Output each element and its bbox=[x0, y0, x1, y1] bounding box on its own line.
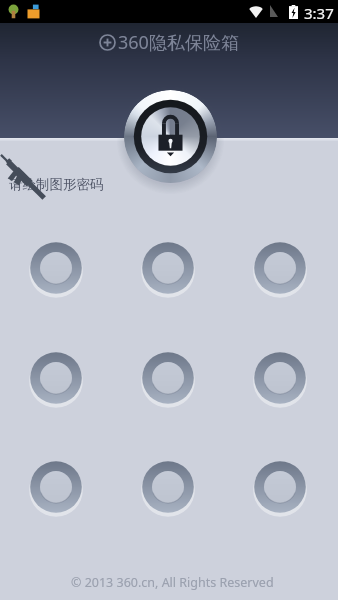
button[interactable] bbox=[138, 457, 198, 517]
button[interactable]: Unlock bbox=[124, 90, 217, 183]
button[interactable] bbox=[250, 348, 310, 408]
button[interactable] bbox=[26, 348, 86, 408]
button[interactable] bbox=[138, 348, 198, 408]
button[interactable] bbox=[26, 457, 86, 517]
button[interactable] bbox=[250, 238, 310, 298]
button[interactable] bbox=[26, 238, 86, 298]
staticText: © 2013 360.cn, All Rights Reserved bbox=[71, 574, 274, 591]
staticText: 请绘制图形密码 bbox=[9, 176, 104, 193]
button[interactable] bbox=[138, 238, 198, 298]
staticText: 360隐私保险箱 bbox=[118, 30, 239, 55]
staticText: 3:37 bbox=[304, 3, 334, 23]
button[interactable] bbox=[250, 457, 310, 517]
button[interactable]: 360 Privacy Safe bbox=[0, 23, 338, 61]
